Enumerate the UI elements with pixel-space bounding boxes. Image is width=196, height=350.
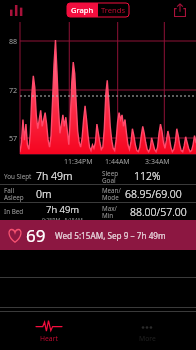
staticText: You Slept xyxy=(4,172,32,181)
button[interactable]: Share xyxy=(171,1,189,19)
button[interactable]: Trends xyxy=(98,3,129,17)
staticText: Max/Min xyxy=(102,204,128,219)
button[interactable]: 69 xyxy=(0,220,196,250)
button[interactable]: You Slept xyxy=(0,168,98,184)
staticText: 88.00/57.00 xyxy=(130,205,187,219)
staticText: 7h 49m xyxy=(36,169,73,183)
staticText: More xyxy=(139,334,156,343)
staticText: Heart xyxy=(40,334,58,343)
staticText: 3:34AM xyxy=(145,157,170,167)
staticText: 0m xyxy=(36,187,52,201)
staticText: Graph xyxy=(71,5,94,15)
button[interactable]: Heart xyxy=(0,312,98,350)
button[interactable]: In Bed xyxy=(0,203,98,220)
staticText: Fall Asleep xyxy=(4,186,34,201)
staticText: 7h 49m xyxy=(46,203,79,216)
button[interactable]: Max/Min xyxy=(98,203,196,220)
staticText: 68.95/69.00 xyxy=(125,187,182,201)
staticText: In Bed xyxy=(4,207,24,216)
button[interactable]: Fall Asleep xyxy=(0,185,98,202)
staticText: 1:44AM xyxy=(105,157,130,167)
staticText: 69 xyxy=(26,224,46,247)
staticText: Trends xyxy=(101,5,126,15)
staticText: Mean/ Mode xyxy=(102,186,121,201)
staticText: 112% xyxy=(134,169,161,183)
staticText: Wed 5:15AM, Sep 9 – 7h 49m xyxy=(55,230,166,241)
staticText: 72 xyxy=(9,85,18,95)
staticText: 11:34PM xyxy=(64,157,93,167)
button[interactable]: Statistics xyxy=(7,1,25,19)
staticText: 57 xyxy=(9,133,18,143)
button[interactable]: Sleep Goal xyxy=(98,168,196,184)
button[interactable]: Graph xyxy=(67,3,98,17)
button[interactable]: Mean/ Mode xyxy=(98,185,196,202)
staticText: 88 xyxy=(9,36,18,46)
staticText: Sleep Goal xyxy=(102,169,132,184)
staticText: 9:25PM - 5:15AM xyxy=(42,216,83,220)
